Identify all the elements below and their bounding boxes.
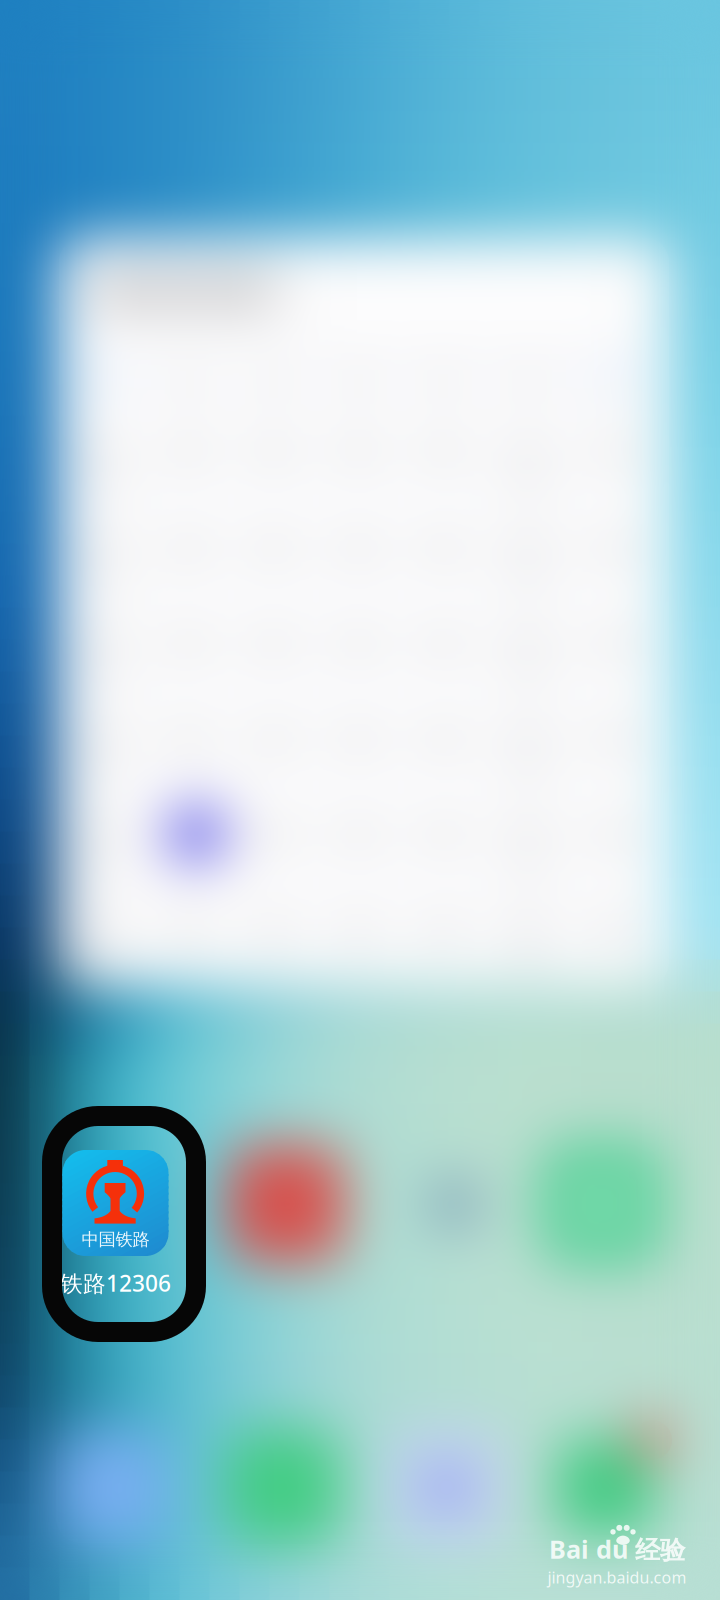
staticText: jingyan.baidu.com (547, 1567, 686, 1588)
staticText: 铁路12306 (60, 1268, 171, 1298)
staticText: 中国铁路 (81, 1229, 149, 1250)
staticText: Bai du 经验 (549, 1532, 685, 1566)
